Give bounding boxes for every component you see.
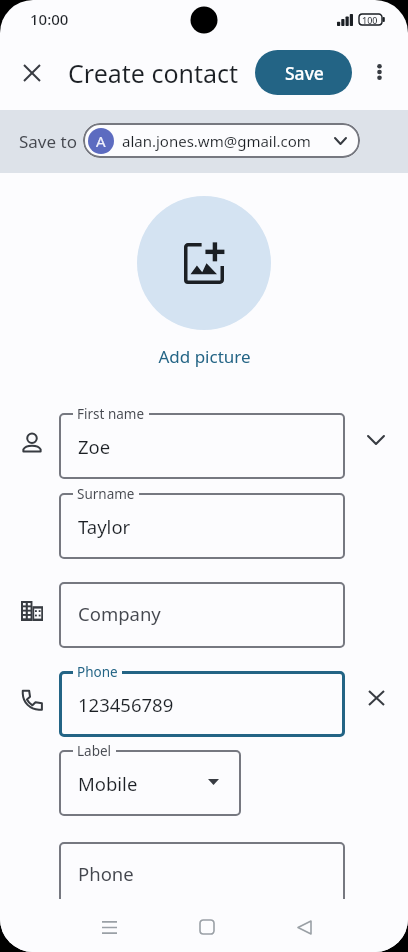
button[interactable] (59, 493, 345, 559)
staticText: Zoe (78, 434, 111, 459)
button[interactable]: Recent apps (85, 903, 133, 951)
button[interactable]: Add picture (137, 196, 271, 330)
staticText: Company (78, 601, 161, 626)
button[interactable]: Back (280, 903, 328, 951)
button[interactable]: Save (255, 50, 352, 95)
button[interactable] (59, 582, 345, 648)
staticText: Phone (77, 663, 118, 681)
staticText: Mobile (78, 771, 138, 796)
button[interactable]: Expand name fields (354, 418, 398, 462)
button[interactable]: Phone (10, 678, 54, 722)
button[interactable] (59, 413, 345, 479)
staticText: Phone (78, 861, 134, 886)
staticText: 123456789 (78, 692, 174, 717)
staticText: Taylor (78, 514, 131, 539)
button[interactable]: Add picture (158, 345, 251, 368)
staticText: alan.jones.wm@gmail.com (122, 131, 311, 151)
button[interactable]: More options (356, 49, 402, 95)
button[interactable] (59, 750, 241, 816)
staticText: A (96, 131, 106, 151)
staticText: Save to (19, 130, 77, 153)
staticText: Surname (77, 485, 135, 503)
staticText: 100 (362, 14, 378, 26)
button[interactable]: Close (8, 49, 56, 97)
staticText: 10:00 (30, 9, 69, 29)
button[interactable]: A (83, 123, 360, 158)
staticText: Label (77, 742, 112, 760)
staticText: Save (285, 61, 324, 85)
staticText: First name (77, 405, 145, 423)
button[interactable]: Home (183, 903, 231, 951)
button[interactable]: Name (10, 420, 54, 464)
button[interactable] (59, 842, 345, 908)
button[interactable] (59, 671, 345, 737)
button[interactable]: Company (10, 589, 54, 633)
staticText: Create contact (68, 56, 239, 90)
button[interactable]: Clear phone (354, 676, 398, 720)
